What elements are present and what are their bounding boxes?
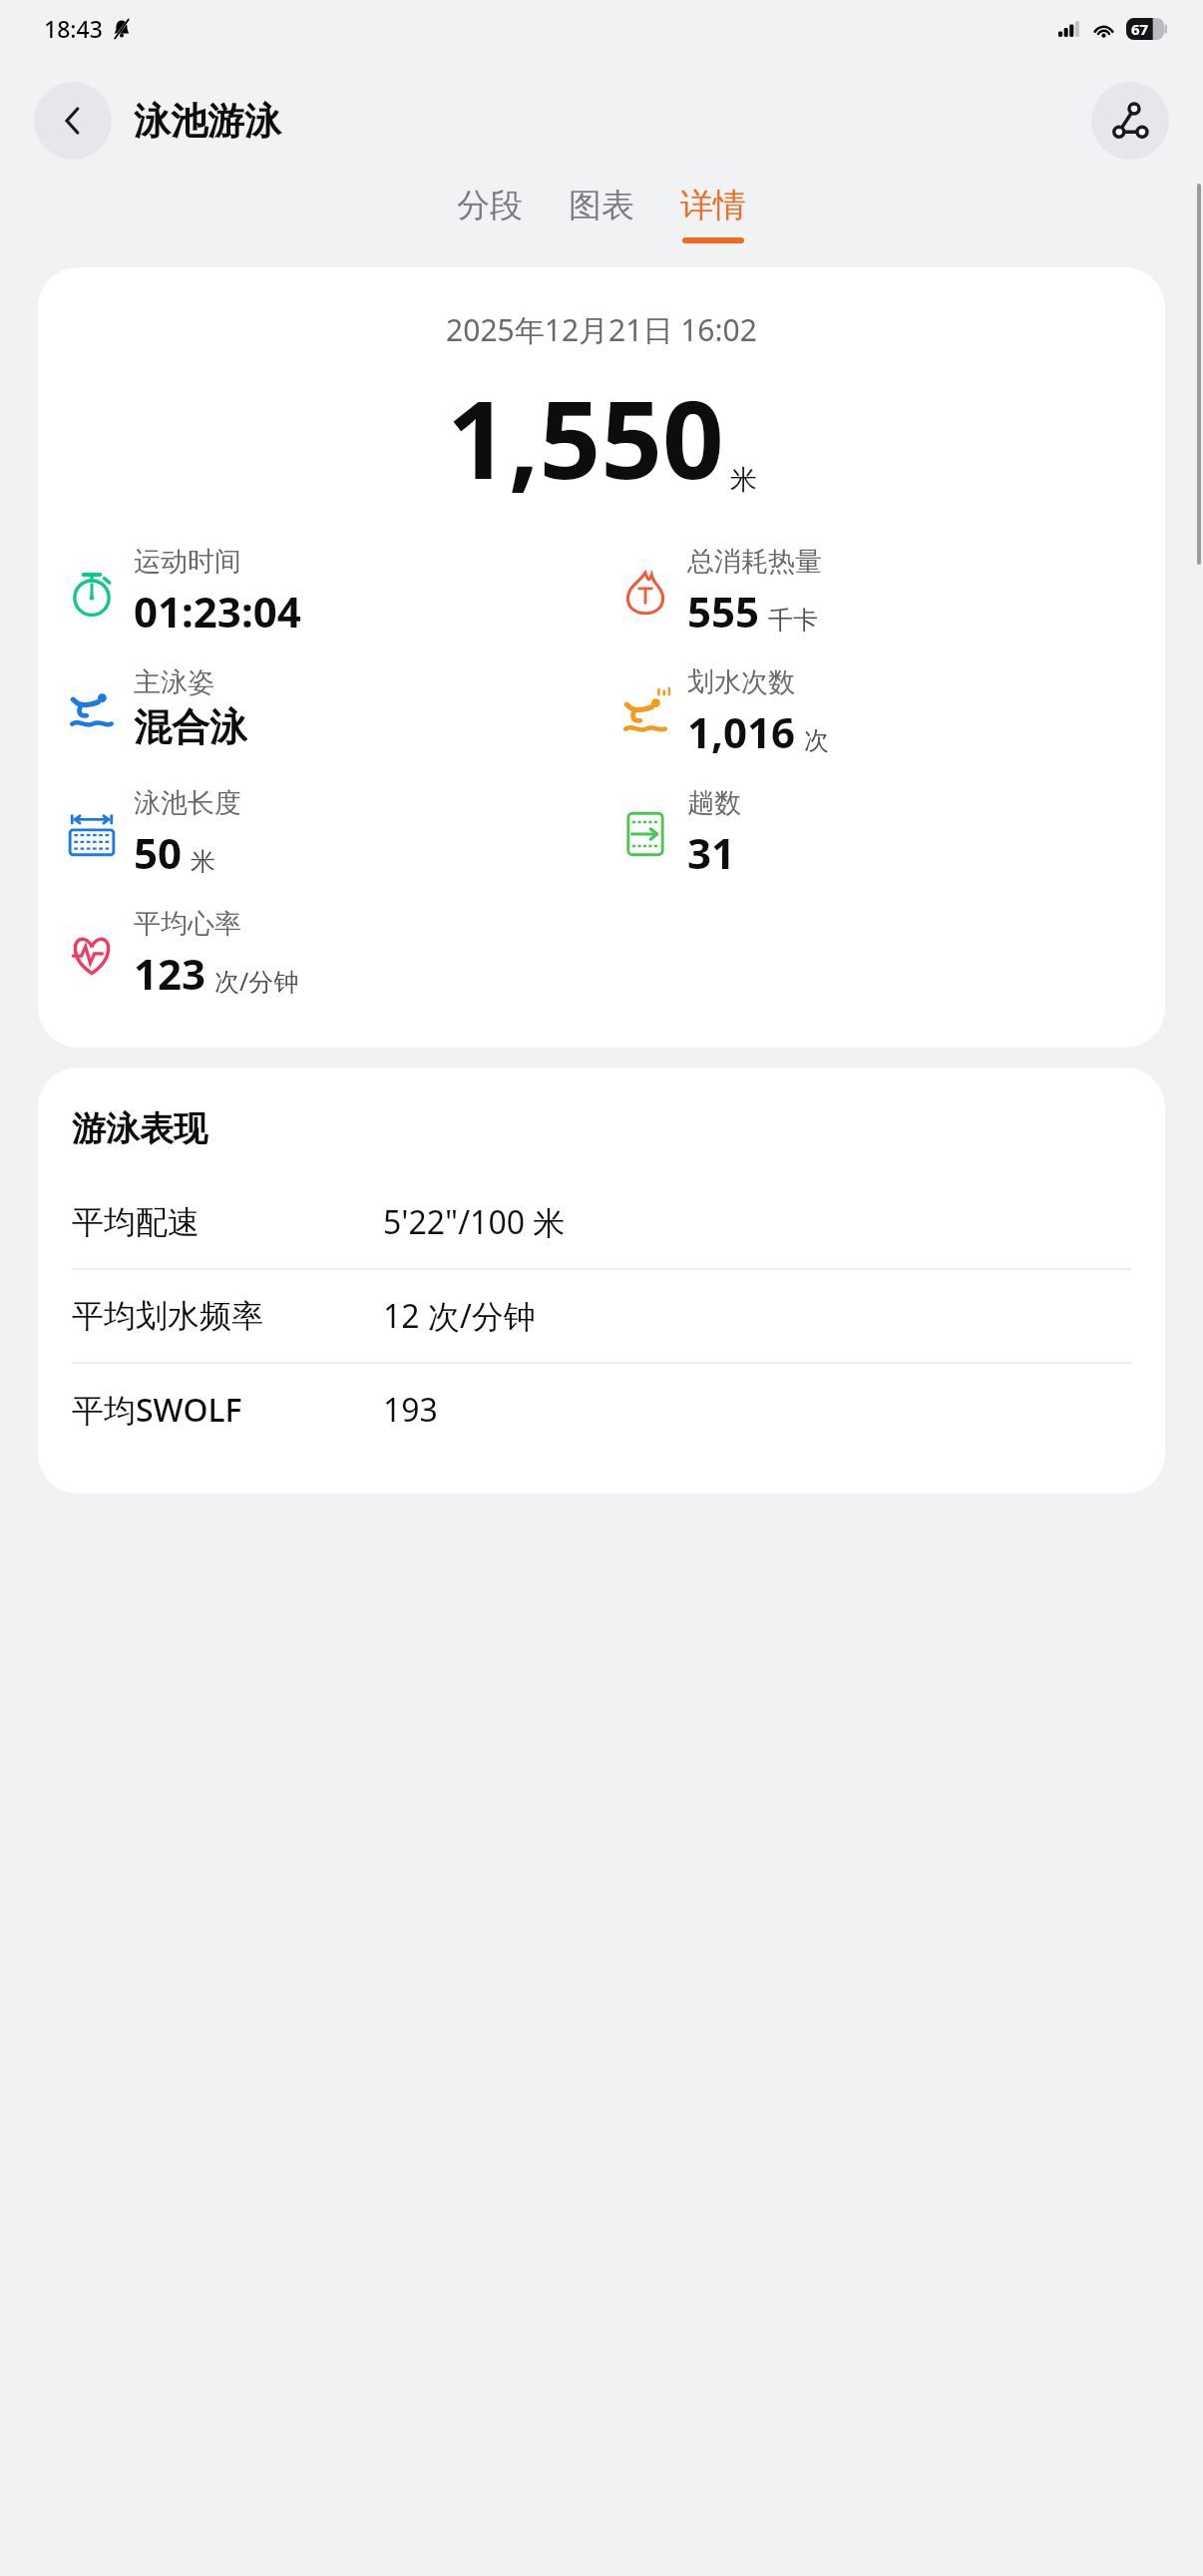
button[interactable]: 平均划水频率 [38, 1270, 1165, 1364]
staticText: 平均SWOLF [72, 1388, 341, 1432]
staticText: 次 [804, 725, 829, 756]
staticText: 193 [383, 1388, 438, 1432]
staticText: 平均划水频率 [72, 1296, 341, 1336]
button[interactable]: 主泳姿 [66, 665, 247, 751]
staticText: 泳池长度 [134, 786, 241, 820]
staticText: 划水次数 [687, 665, 795, 699]
button[interactable]: 总消耗热量 [619, 545, 822, 640]
staticText: 分段 [457, 185, 523, 226]
staticText: 主泳姿 [134, 665, 214, 699]
button[interactable]: 平均SWOLF [38, 1364, 1165, 1456]
staticText: 运动时间 [134, 545, 241, 579]
staticText: 趟数 [687, 786, 741, 820]
staticText: 1,550 [447, 364, 724, 511]
staticText: 米 [730, 463, 757, 497]
staticText: 12 次/分钟 [383, 1294, 536, 1338]
staticText: 18:43 [44, 13, 103, 44]
staticText: 1,016 [687, 703, 796, 760]
button[interactable]: 详情 [676, 185, 750, 243]
staticText: 米 [191, 846, 215, 877]
button[interactable]: 图表 [565, 185, 638, 243]
staticText: 游泳表现 [72, 1107, 207, 1150]
button[interactable]: 划水次数 [619, 665, 829, 760]
staticText: 泳池游泳 [134, 98, 281, 145]
button[interactable]: 平均心率 [66, 907, 299, 1002]
button[interactable]: 泳池长度 [66, 786, 241, 881]
button[interactable]: 分段 [453, 185, 527, 243]
staticText: 次/分钟 [214, 964, 299, 998]
staticText: 千卡 [768, 605, 818, 636]
button[interactable]: Route [1091, 82, 1169, 160]
staticText: 平均配速 [72, 1202, 341, 1242]
staticText: 50 [134, 824, 183, 881]
staticText: 平均心率 [134, 907, 241, 941]
button[interactable]: 运动时间 [66, 545, 301, 640]
staticText: 2025年12月21日 16:02 [38, 309, 1165, 350]
staticText: 01:23:04 [134, 583, 301, 640]
button[interactable]: 平均配速 [38, 1176, 1165, 1270]
staticText: 混合泳 [134, 703, 247, 751]
staticText: 123 [134, 945, 206, 1002]
staticText: 总消耗热量 [687, 545, 822, 579]
staticText: 555 [687, 583, 760, 640]
button[interactable]: 趟数 [619, 786, 741, 881]
staticText: 31 [687, 824, 736, 881]
staticText: 图表 [569, 185, 634, 226]
staticText: 详情 [680, 185, 746, 226]
staticText: 67 [1131, 19, 1149, 39]
button[interactable]: Back [34, 82, 112, 160]
staticText: 5'22"/100 米 [383, 1200, 566, 1244]
